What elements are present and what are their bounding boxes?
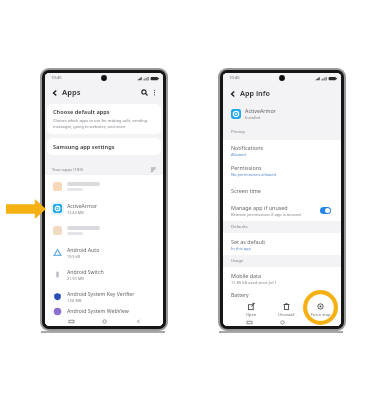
staticText: Apps [62,87,81,97]
staticText: Screen time [231,187,261,194]
button[interactable]: Android Switch [45,263,163,285]
staticText: Android Auto [67,246,100,253]
button[interactable]: Force stop [304,302,337,318]
button[interactable]: Notifications [223,140,341,160]
button[interactable]: Choose default apps [47,104,161,134]
button[interactable]: Permissions [223,160,341,180]
button[interactable]: More options [150,88,159,97]
button[interactable]: Android Auto [45,241,163,263]
staticText: Choose default apps [53,108,110,116]
staticText: Samsung app settings [53,143,115,151]
staticText: Manage app if unused [231,204,288,211]
staticText: In this app [231,246,251,251]
button[interactable]: Recents [241,318,257,326]
button[interactable]: Set as default [223,233,341,255]
staticText: 11.85 kB used since Jul 1 [231,280,277,285]
staticText: App info [240,88,271,98]
staticText: Choose which apps to use for making call… [53,118,148,123]
staticText: Android System Key Verifier [67,290,135,297]
staticText: 19.9 kB [67,254,81,259]
staticText: Open [246,312,257,317]
button[interactable]: Manage app if unused [223,200,341,221]
button[interactable]: Samsung app settings [47,138,161,155]
staticText: messages, going to websites, and more. [53,124,127,129]
staticText: Remove permissions if app is unused [231,212,301,217]
staticText: No permissions allowed [231,172,276,177]
staticText: Mobile data [231,272,261,279]
button[interactable]: ActiveArmor [223,103,341,124]
staticText: Usage [231,258,244,264]
staticText: Allowed [231,152,246,157]
button[interactable]: Back [130,316,146,326]
staticText: Installed [245,115,261,120]
button[interactable]: Home [96,316,112,326]
button[interactable]: Back [308,318,324,326]
staticText: Uninstall [278,312,295,317]
staticText: 21.93 MB [67,276,84,281]
staticText: 10:45 [229,75,240,81]
staticText: Set as default [231,238,266,245]
staticText: 10:45 [51,75,62,81]
staticText: Privacy [231,129,245,135]
button[interactable]: Recents [63,316,79,326]
button[interactable]: Open [235,302,268,318]
button[interactable]: Mobile data [223,267,341,289]
staticText: Permissions [231,164,262,171]
staticText: Android System WebView [67,307,129,314]
staticText: Android Switch [67,268,104,275]
staticText: Defaults [231,224,248,230]
button[interactable] [45,219,163,241]
button[interactable]: Back [49,87,60,98]
button[interactable]: Back [227,88,238,99]
button[interactable]: Uninstall [270,302,303,318]
button[interactable]: Sort [149,165,157,173]
staticText: Notifications [231,144,264,151]
staticText: ActiveArmor [67,202,98,209]
button[interactable] [45,175,163,197]
button[interactable]: ActiveArmor [45,197,163,219]
staticText: 1.06 MB [67,298,82,303]
staticText: Force stop [311,312,331,317]
button[interactable]: Screen time [223,180,341,200]
button[interactable]: Search [139,87,150,98]
button[interactable]: Android System Key Verifier [45,285,163,307]
button[interactable]: Home [274,318,290,326]
staticText: ActiveArmor [245,107,276,114]
button[interactable]: Android System WebView [45,307,163,316]
staticText: 13.43 MB [67,210,84,215]
staticText: Battery [231,291,249,298]
staticText: Your apps (185) [52,166,84,172]
